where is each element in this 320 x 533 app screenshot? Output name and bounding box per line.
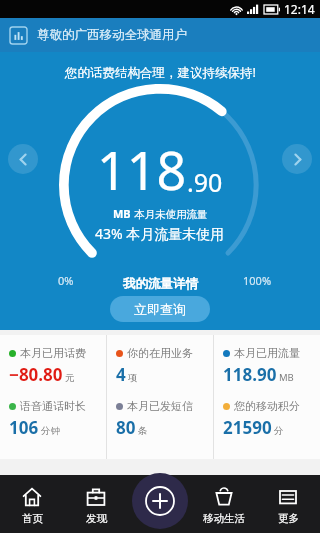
staticText: 43% 本月流量未使用	[95, 224, 225, 243]
staticText: .90	[187, 165, 223, 199]
staticText: 本月已用话费	[20, 346, 86, 360]
staticText: MB	[113, 206, 134, 221]
button[interactable]: 本月已用流量	[214, 335, 320, 459]
staticText: 100%	[243, 273, 272, 288]
staticText: 我的流量详情	[123, 276, 198, 292]
staticText: 分	[274, 425, 284, 437]
staticText: 您的移动积分	[234, 399, 300, 413]
button[interactable]: 立即查询	[110, 296, 210, 322]
button[interactable]: Add	[132, 473, 188, 529]
button[interactable]: More	[256, 475, 320, 533]
staticText: 元	[65, 372, 75, 384]
button[interactable]: Discover	[64, 475, 128, 533]
staticText: 你的在用业务	[127, 346, 193, 360]
staticText: 106	[9, 416, 39, 439]
staticText: 本月未使用流量	[134, 208, 208, 221]
staticText: 118	[97, 134, 187, 205]
button[interactable]: Next	[282, 144, 312, 174]
staticText: 发现	[86, 512, 107, 525]
staticText: 本月已用流量	[234, 346, 300, 360]
staticText: 尊敬的广西移动全球通用户	[37, 27, 187, 43]
staticText: MB	[279, 371, 294, 384]
staticText: 80	[116, 416, 136, 439]
button[interactable]: Previous	[8, 144, 38, 174]
staticText: 更多	[278, 512, 299, 525]
button[interactable]: 你的在用业务	[107, 335, 213, 459]
staticText: 12:14	[284, 1, 315, 17]
staticText: 21590	[223, 416, 272, 439]
staticText: 移动生活	[203, 512, 245, 525]
staticText: 118.90	[223, 363, 277, 386]
staticText: 分钟	[41, 425, 60, 437]
staticText: 您的话费结构合理，建议持续保持!	[65, 64, 256, 81]
button[interactable]: 本月已用话费	[0, 335, 106, 459]
button[interactable]: Mobile Life	[192, 475, 256, 533]
staticText: 0%	[58, 273, 74, 288]
staticText: 语音通话时长	[20, 399, 86, 413]
staticText: −80.80	[9, 363, 63, 386]
button[interactable]: Home	[0, 475, 64, 533]
button[interactable]: Statistics	[0, 18, 320, 52]
staticText: 本月已发短信	[127, 399, 193, 413]
staticText: 首页	[22, 512, 43, 525]
staticText: 项	[128, 372, 138, 384]
staticText: 条	[138, 425, 148, 437]
other: Statistics	[10, 27, 27, 44]
staticText: 4	[116, 363, 126, 386]
staticText: 立即查询	[134, 301, 186, 317]
